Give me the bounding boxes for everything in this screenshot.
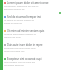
- staticText: voluptate velit esse cillum dolo: [4, 47, 36, 50]
- staticText: laboris nisi ut ali: [4, 36, 21, 39]
- staticText: Excepteur sint occaecat cupi: [7, 57, 42, 61]
- button[interactable]: Sed do eiusmod tempor inci: [0, 14, 64, 28]
- staticText: non proident sunt in culpa qui: [4, 61, 35, 64]
- staticText: aliqua ut enim ad: [4, 22, 22, 25]
- staticText: Duis aute irure dolor in repre: [7, 43, 43, 47]
- staticText: Sed do eiusmod tempor inci: [7, 15, 42, 19]
- staticText: nostrud exercitation ullamco la: [4, 33, 36, 36]
- staticText: ut labore et dolore magna ali: [4, 19, 34, 22]
- staticText: qui officia deserunt: [4, 64, 24, 67]
- staticText: eiusmod tempor inc: [4, 8, 25, 11]
- button[interactable]: Excepteur sint occaecat cupi: [0, 56, 64, 70]
- button[interactable]: Lorem ipsum dolor sit amet conse: [0, 0, 64, 14]
- staticText: consectetur adipiscing elit sed do: [4, 5, 39, 8]
- button[interactable]: Ut enim ad minim veniam quis: [0, 28, 64, 42]
- staticText: Lorem ipsum dolor sit amet conse: [7, 1, 49, 5]
- staticText: Ut enim ad minim veniam quis: [7, 29, 45, 33]
- button[interactable]: Duis aute irure dolor in repre: [0, 42, 64, 56]
- staticText: dolore eu fugiat nul: [4, 50, 25, 53]
